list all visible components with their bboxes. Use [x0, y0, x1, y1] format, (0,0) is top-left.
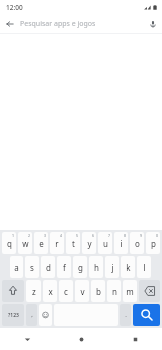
staticText: w	[22, 238, 29, 249]
staticText: 9	[140, 233, 143, 238]
staticText: m	[126, 286, 134, 297]
button[interactable]: t	[66, 232, 80, 254]
staticText: k	[126, 262, 131, 273]
staticText: Pesquisar apps e jogos	[20, 19, 144, 29]
button[interactable]: w	[18, 232, 32, 254]
button[interactable]: f	[57, 256, 71, 278]
button[interactable]: e	[34, 232, 48, 254]
staticText: u	[103, 238, 108, 249]
button[interactable]: a	[10, 256, 23, 278]
button[interactable]: l	[137, 256, 151, 278]
button[interactable]: Voice search	[144, 14, 162, 33]
staticText: q	[7, 238, 12, 249]
staticText: 8	[124, 233, 127, 238]
staticText: 5	[76, 233, 79, 238]
staticText: i	[120, 238, 123, 249]
staticText: h	[94, 262, 99, 273]
staticText: ?123	[8, 312, 19, 319]
button[interactable]: ,	[26, 304, 37, 326]
button[interactable]: x	[43, 280, 57, 302]
button[interactable]: k	[121, 256, 135, 278]
staticText: c	[64, 286, 68, 297]
button[interactable]: Shift	[2, 280, 24, 302]
button[interactable]: j	[105, 256, 119, 278]
button[interactable]: Home	[54, 328, 108, 350]
staticText: a	[14, 262, 19, 273]
staticText: j	[111, 262, 114, 273]
staticText: 6	[92, 233, 95, 238]
button[interactable]: Search	[133, 304, 160, 326]
staticText: 7	[108, 233, 111, 238]
staticText: 2	[28, 233, 31, 238]
staticText: g	[78, 262, 83, 273]
staticText: y	[87, 238, 92, 249]
staticText: 0	[156, 233, 159, 238]
staticText: t	[72, 238, 75, 249]
staticText: 1	[12, 233, 15, 238]
button[interactable]: g	[73, 256, 87, 278]
button[interactable]: c	[59, 280, 73, 302]
button[interactable]: ?123	[2, 304, 24, 326]
button[interactable]: Back	[0, 14, 20, 33]
button[interactable]: o	[130, 232, 144, 254]
staticText: n	[112, 286, 117, 297]
button[interactable]: d	[41, 256, 55, 278]
button[interactable]: n	[107, 280, 121, 302]
staticText: s	[30, 262, 34, 273]
button[interactable]: v	[75, 280, 89, 302]
staticText: 3	[44, 233, 47, 238]
button[interactable]: Backspace	[139, 280, 160, 302]
staticText: .	[125, 311, 127, 319]
staticText: o	[135, 238, 140, 249]
staticText: l	[143, 262, 146, 273]
button[interactable]: b	[91, 280, 105, 302]
button[interactable]: y	[82, 232, 96, 254]
staticText: f	[63, 262, 66, 273]
staticText: z	[32, 286, 36, 297]
button[interactable]: h	[89, 256, 103, 278]
staticText: p	[151, 238, 156, 249]
button[interactable]: p	[146, 232, 160, 254]
staticText: v	[80, 286, 85, 297]
staticText: 12:00	[6, 3, 23, 12]
staticText: e	[39, 238, 44, 249]
button[interactable]: z	[26, 280, 41, 302]
button[interactable]: Back	[0, 328, 54, 350]
button[interactable]: Emoji	[39, 304, 52, 326]
staticText: d	[46, 262, 51, 273]
staticText: r	[55, 238, 59, 249]
button[interactable]: u	[98, 232, 112, 254]
button[interactable]: r	[50, 232, 64, 254]
button[interactable]: i	[114, 232, 128, 254]
staticText: 4	[60, 233, 63, 238]
button[interactable]: Recents	[108, 328, 162, 350]
staticText: ,	[31, 311, 33, 319]
staticText: b	[96, 286, 101, 297]
button[interactable]: s	[25, 256, 39, 278]
button[interactable]: q	[2, 232, 16, 254]
button[interactable]: m	[123, 280, 137, 302]
staticText: x	[48, 286, 53, 297]
